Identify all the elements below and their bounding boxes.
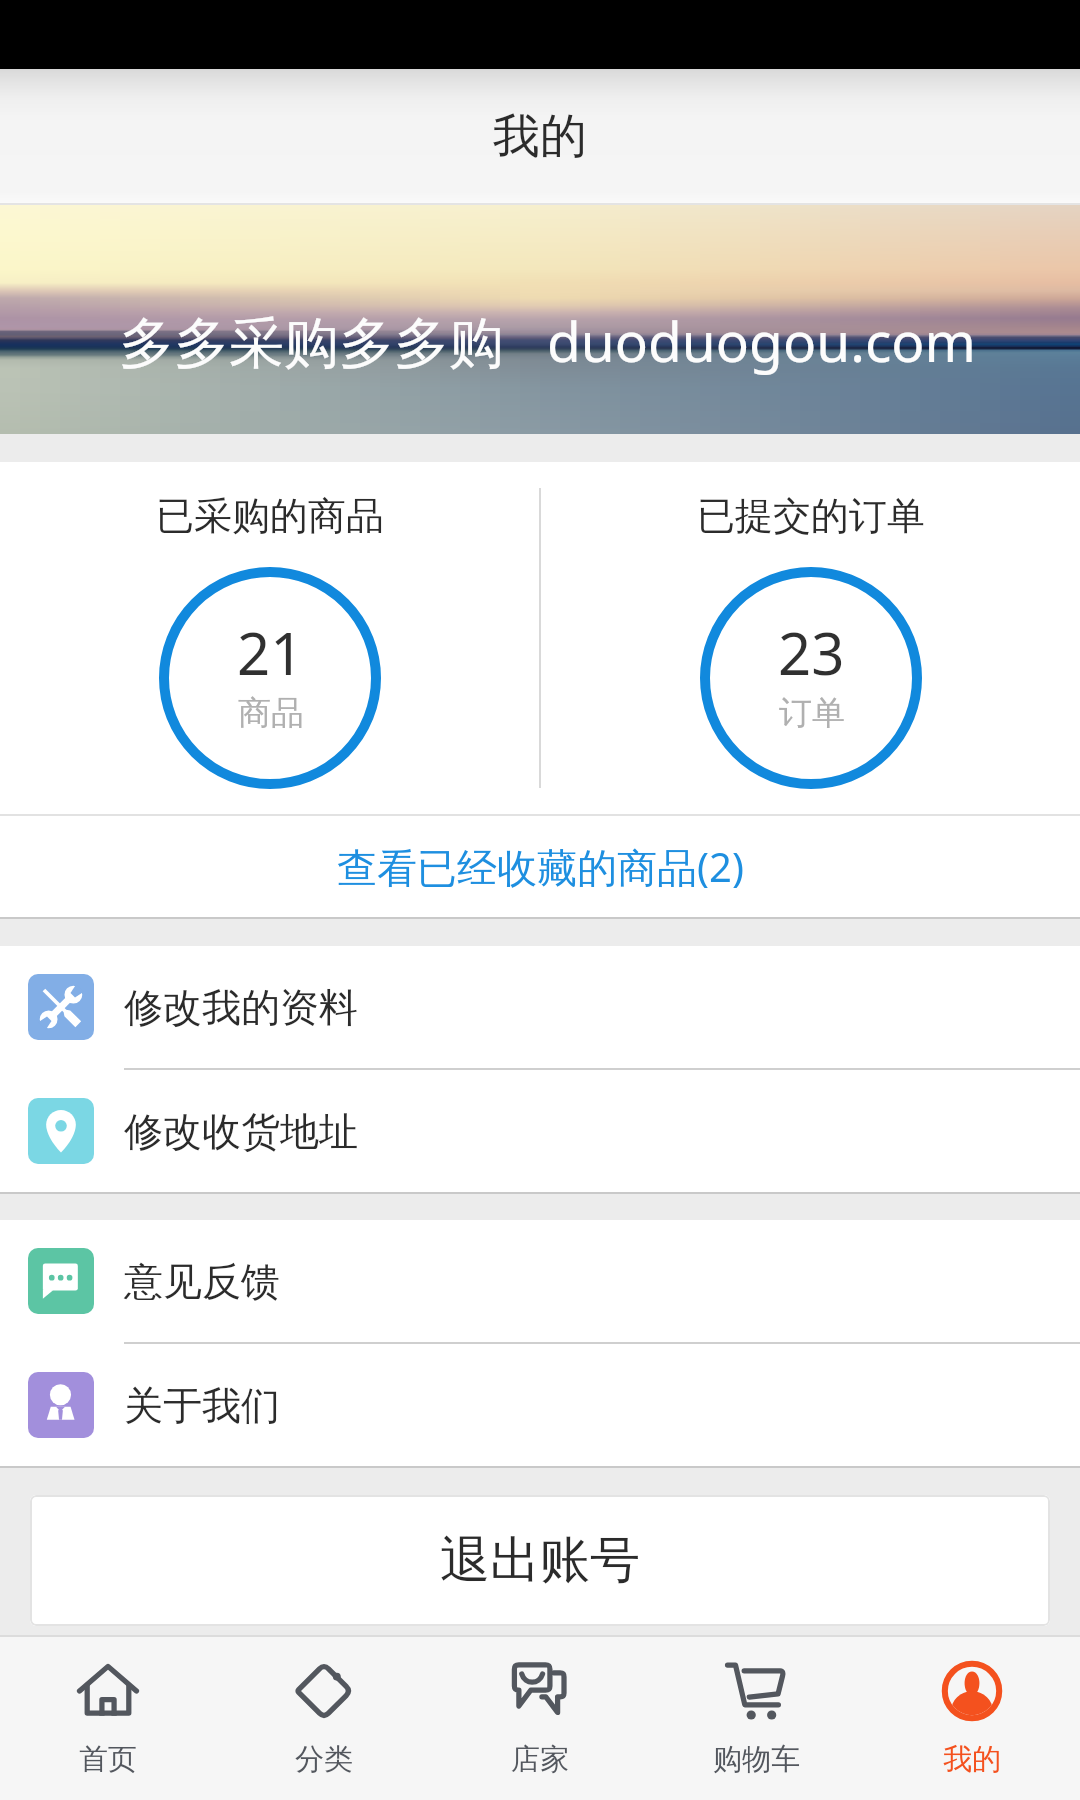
button[interactable]: 已提交的订单 [541,462,1080,814]
button[interactable]: 已采购的商品 [0,462,539,814]
button[interactable]: 意见反馈 [0,1220,1080,1342]
staticText: 修改我的资料 [124,983,358,1032]
button[interactable]: 关于我们 [0,1344,1080,1466]
staticText: 我的 [493,107,587,166]
button[interactable]: 购物车 [648,1637,864,1800]
staticText: 21 [237,613,304,692]
staticText: 已采购的商品 [156,492,384,540]
staticText: 查看已经收藏的商品(2) [337,839,744,894]
button[interactable]: 店家 [432,1637,648,1800]
staticText: 分类 [295,1741,353,1778]
staticText: 已提交的订单 [697,492,925,540]
button[interactable]: 首页 [0,1637,216,1800]
staticText: 店家 [511,1741,569,1778]
button[interactable]: 分类 [216,1637,432,1800]
staticText: 购物车 [713,1741,800,1778]
staticText: 退出账号 [440,1529,640,1592]
button[interactable]: 我的 [864,1637,1080,1800]
staticText: 关于我们 [124,1381,280,1430]
button[interactable]: 修改我的资料 [0,946,1080,1068]
staticText: 23 [778,613,845,692]
staticText: 意见反馈 [124,1257,280,1306]
button[interactable]: 退出账号 [30,1495,1050,1626]
staticText: 我的 [943,1741,1001,1778]
button[interactable]: 查看已经收藏的商品(2) [0,816,1080,917]
button[interactable]: 修改收货地址 [0,1070,1080,1192]
staticText: 多多采购多多购 duoduogou.com [119,303,977,378]
staticText: 修改收货地址 [124,1107,358,1156]
staticText: 商品 [238,692,304,734]
staticText: 首页 [79,1741,137,1778]
staticText: 订单 [779,692,845,734]
